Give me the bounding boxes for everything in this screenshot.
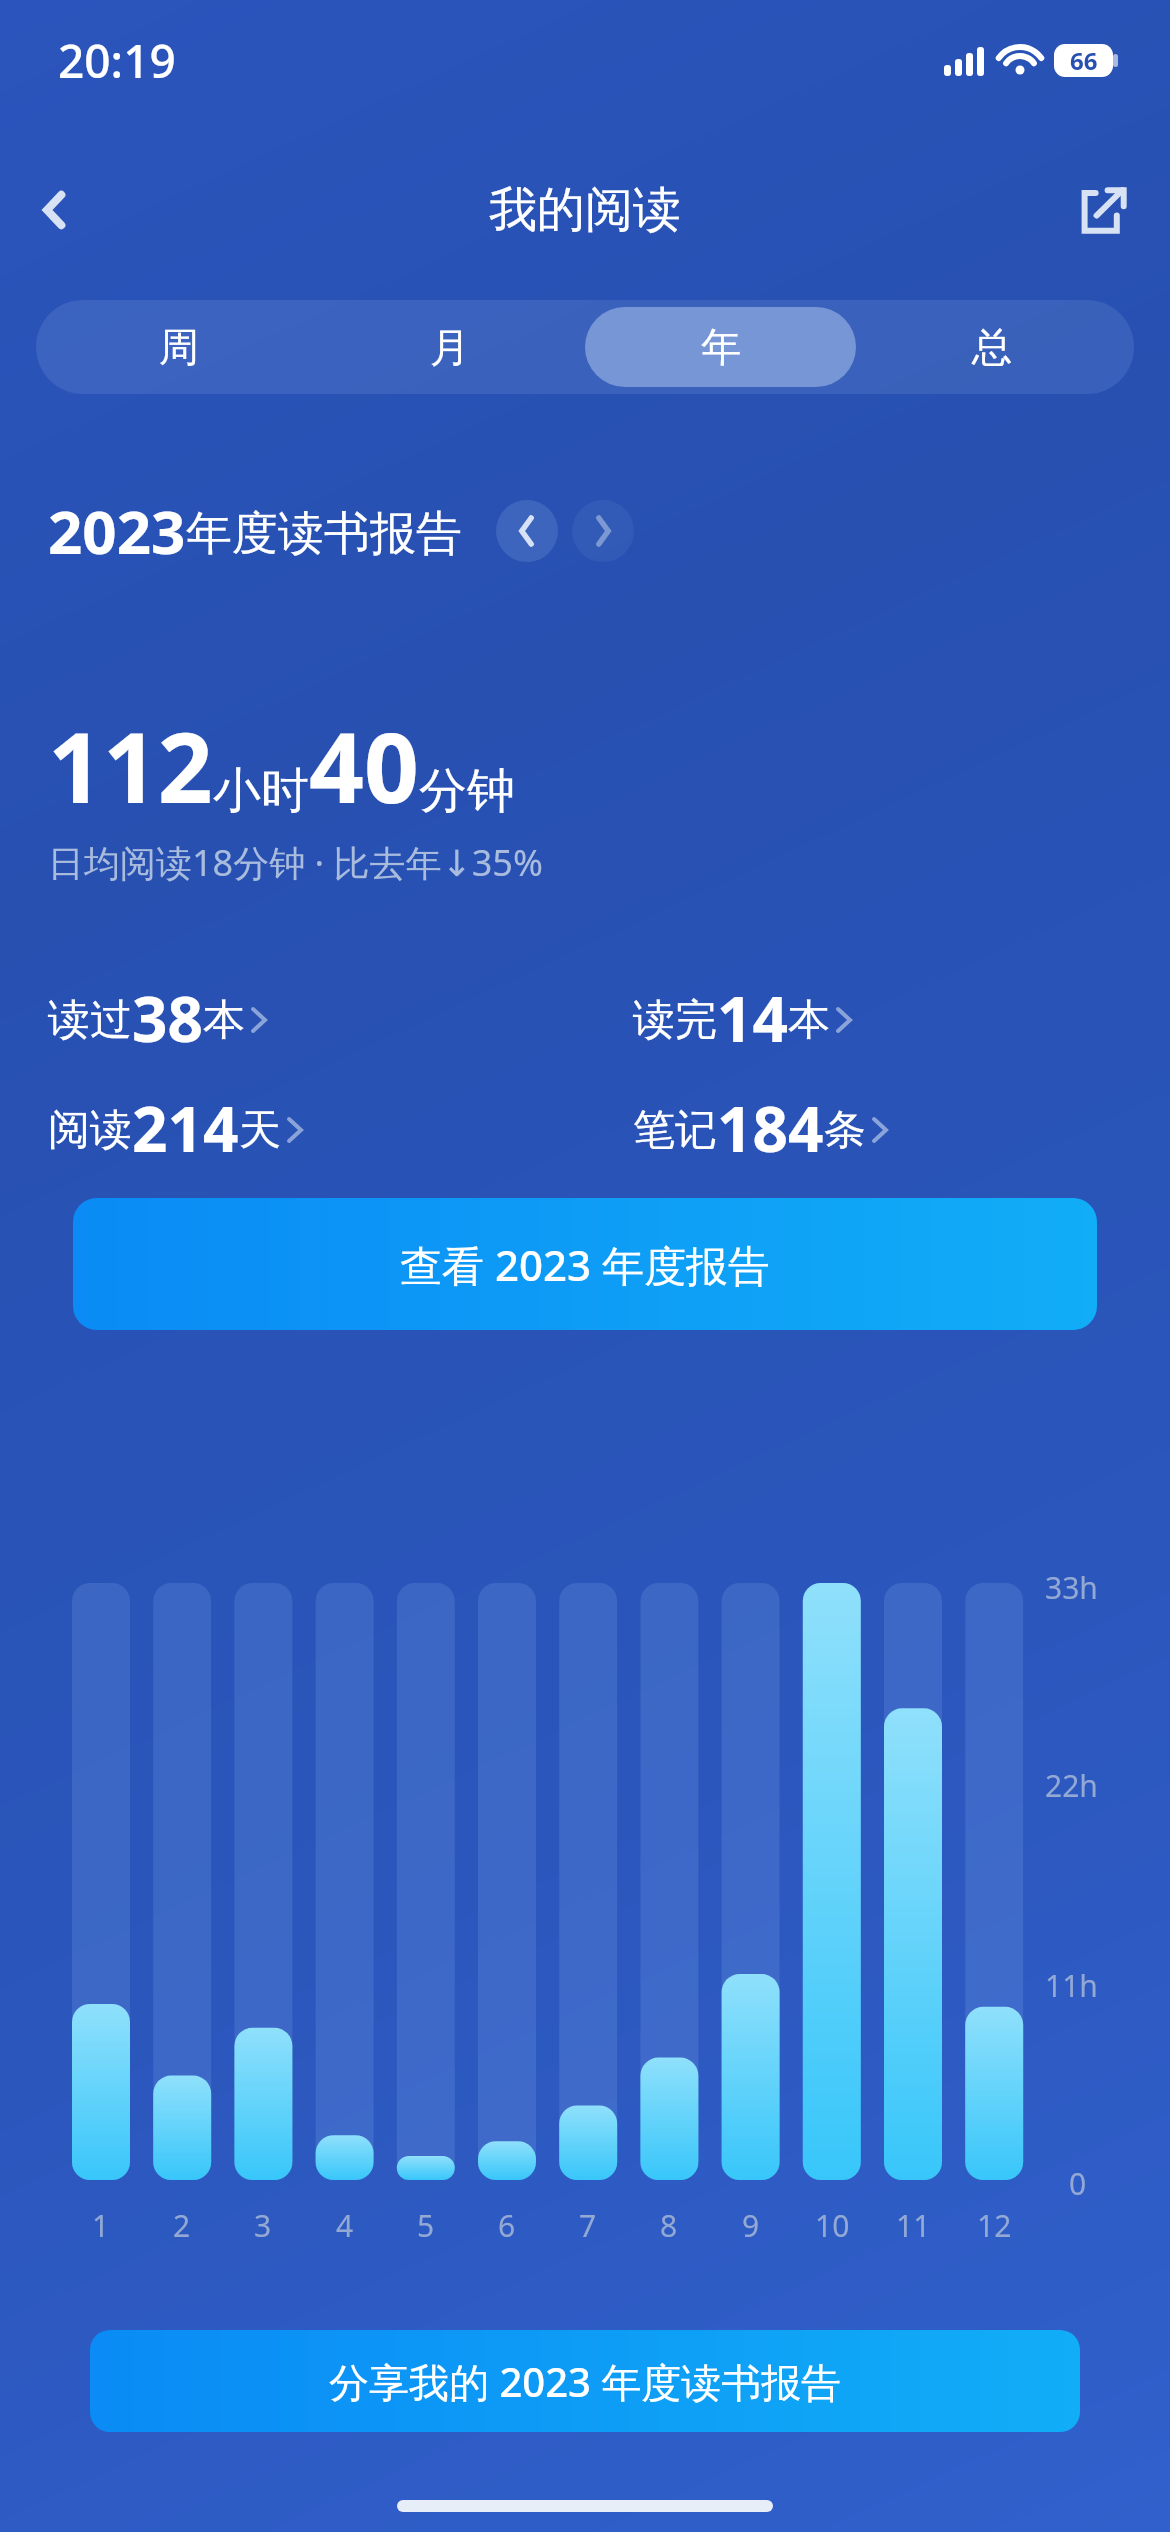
staticText: 66 — [1070, 44, 1098, 77]
staticText: 12 — [977, 2205, 1012, 2246]
staticText: 0 — [1069, 2163, 1087, 2204]
staticText: 4 — [336, 2205, 354, 2246]
staticText: 33h — [1045, 1567, 1098, 1608]
button[interactable]: 年 — [585, 307, 856, 387]
staticText: 总 — [972, 322, 1012, 372]
staticText: 2023 — [48, 490, 186, 572]
staticText: 112 — [48, 700, 213, 831]
staticText: 10 — [815, 2205, 850, 2246]
button[interactable]: 阅读 — [48, 1075, 585, 1185]
staticText: 读过 — [48, 994, 132, 1047]
button[interactable]: 月 — [314, 307, 585, 387]
staticText: 分享我的 2023 年度读书报告 — [329, 2354, 842, 2409]
staticText: 6 — [498, 2205, 516, 2246]
staticText: 分钟 — [419, 761, 515, 821]
staticText: 2 — [173, 2205, 191, 2246]
staticText: 14 — [717, 976, 788, 1060]
staticText: 40 — [309, 700, 419, 831]
button[interactable]: 读完 — [633, 965, 1170, 1075]
button[interactable]: Next year — [572, 500, 634, 562]
staticText: 月 — [430, 322, 470, 372]
staticText: 本 — [203, 994, 245, 1047]
staticText: 11 — [896, 2205, 931, 2246]
staticText: 5 — [417, 2205, 435, 2246]
button[interactable]: 读过 — [48, 965, 585, 1075]
staticText: 9 — [742, 2205, 760, 2246]
button[interactable]: 总 — [856, 307, 1127, 387]
staticText: 阅读 — [48, 1104, 132, 1157]
staticText: 天 — [239, 1104, 281, 1157]
button[interactable]: 分享我的 2023 年度读书报告 — [90, 2330, 1080, 2432]
staticText: 条 — [824, 1104, 866, 1157]
staticText: 3 — [254, 2205, 272, 2246]
staticText: 1 — [92, 2205, 110, 2246]
staticText: 184 — [717, 1086, 824, 1170]
staticText: 查看 2023 年度报告 — [400, 1236, 770, 1293]
staticText: 我的阅读 — [489, 180, 681, 240]
staticText: 小时 — [213, 761, 309, 821]
button[interactable]: 查看 2023 年度报告 — [73, 1198, 1097, 1330]
staticText: 周 — [159, 322, 199, 372]
button[interactable]: Share — [1060, 167, 1146, 253]
button[interactable]: Previous year — [496, 500, 558, 562]
staticText: 日均阅读18分钟 · 比去年↓35% — [48, 838, 543, 887]
staticText: 笔记 — [633, 1104, 717, 1157]
staticText: 22h — [1045, 1765, 1098, 1806]
staticText: 7 — [579, 2205, 597, 2246]
staticText: 读完 — [633, 994, 717, 1047]
button[interactable]: 笔记 — [633, 1075, 1170, 1185]
staticText: 214 — [132, 1086, 239, 1170]
button[interactable]: 周 — [43, 307, 314, 387]
staticText: 11h — [1045, 1965, 1098, 2006]
staticText: 年度读书报告 — [186, 505, 462, 563]
staticText: 20:19 — [58, 29, 176, 92]
staticText: 年 — [701, 322, 741, 372]
staticText: 本 — [788, 994, 830, 1047]
staticText: 38 — [132, 976, 203, 1060]
button[interactable]: Back — [10, 165, 100, 255]
staticText: 8 — [660, 2205, 678, 2246]
